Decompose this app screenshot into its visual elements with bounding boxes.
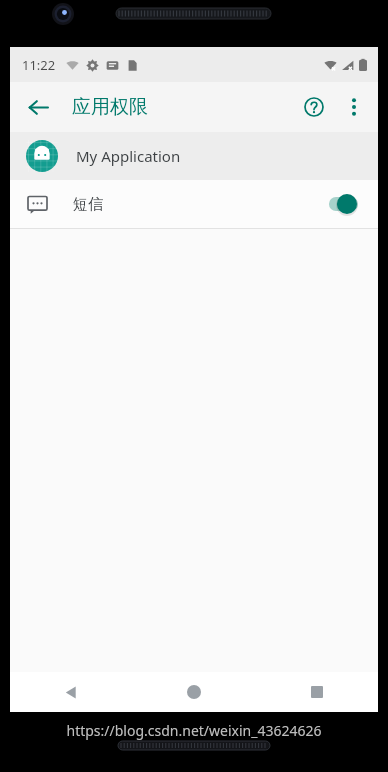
button[interactable]: More options: [334, 87, 374, 127]
button[interactable]: SMS permission toggle, on: [316, 189, 360, 219]
staticText: 应用权限: [72, 95, 148, 119]
button[interactable]: Recent apps: [255, 672, 378, 712]
staticText: My Application: [76, 146, 181, 166]
button[interactable]: Back: [10, 672, 132, 712]
staticText: 短信: [73, 195, 103, 214]
button[interactable]: My Application: [10, 132, 378, 180]
button[interactable]: Help: [294, 87, 334, 127]
button[interactable]: 短信: [10, 180, 378, 228]
button[interactable]: Home: [132, 672, 255, 712]
staticText: https://blog.csdn.net/weixin_43624626: [66, 721, 322, 740]
staticText: 11:22: [22, 56, 56, 74]
button[interactable]: Back: [18, 87, 58, 127]
